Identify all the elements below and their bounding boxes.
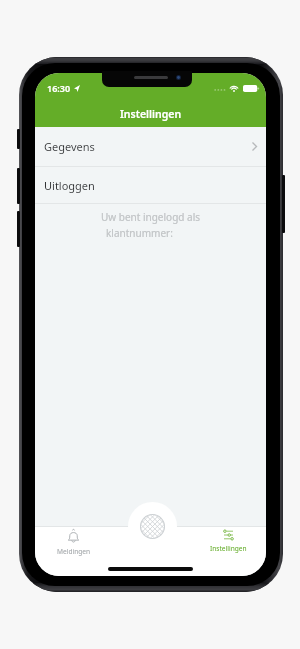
staticText: Uitloggen — [44, 178, 95, 193]
button[interactable]: Gegevens — [35, 127, 266, 166]
button[interactable]: Uitloggen — [35, 167, 266, 203]
button[interactable]: Instellingen — [190, 526, 266, 576]
staticText: 16:30 — [47, 82, 71, 94]
button[interactable]: Scan — [128, 502, 177, 551]
staticText: Meldingen — [57, 547, 91, 556]
staticText: klantnummer: — [106, 226, 173, 240]
staticText: Uw bent ingelogd als — [101, 210, 201, 224]
button[interactable]: Meldingen — [35, 526, 112, 576]
staticText: Instellingen — [35, 107, 266, 121]
staticText: Instellingen — [210, 544, 247, 553]
staticText: Gegevens — [44, 139, 95, 154]
